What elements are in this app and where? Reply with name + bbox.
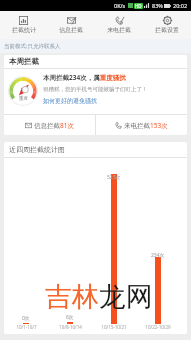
staticText: 拦截统计 — [12, 26, 36, 34]
staticText: 信息拦截81次 — [34, 121, 74, 130]
button[interactable]: 来电拦截153次 — [96, 115, 187, 135]
staticText: 0次 — [22, 315, 30, 322]
button[interactable]: 拦截设置 — [143, 11, 191, 39]
staticText: 拦截设置 — [155, 26, 179, 34]
staticText: 近四周拦截统计图 — [9, 145, 65, 154]
button[interactable]: 信息拦截81次 — [4, 115, 95, 135]
staticText: 吉林龙网 — [45, 280, 153, 314]
staticText: 来电拦截153次 — [124, 121, 168, 130]
staticText: 6次 — [66, 314, 74, 321]
staticText: 0K/s — [114, 2, 126, 9]
staticText: 10/8-10/14 — [59, 324, 82, 330]
staticText: HD — [135, 3, 142, 9]
button[interactable]: 来电拦截 — [95, 11, 143, 39]
button[interactable]: 拦截统计 — [0, 11, 47, 39]
staticText: 来电拦截 — [107, 26, 131, 34]
staticText: 信息拦截 — [59, 26, 83, 34]
staticText: 很糟糕，您的手机号可能被骗子们盯上了！ — [43, 86, 148, 93]
staticText: 234次 — [151, 252, 165, 259]
staticText: 本周拦截 — [9, 57, 39, 66]
staticText: 重度 — [19, 96, 28, 102]
staticText: 20:02 — [173, 2, 188, 9]
staticText: 10/1-10/7 — [16, 324, 37, 330]
button[interactable]: 信息拦截 — [47, 11, 95, 39]
staticText: 83% — [152, 2, 163, 9]
button[interactable]: 当前模式:只允许联系人 — [0, 39, 191, 53]
button[interactable]: 如何更好的避免骚扰 — [43, 97, 97, 105]
staticText: 10/22-10/29 — [145, 324, 171, 330]
staticText: 10/15-10/21 — [101, 324, 127, 330]
staticText: 当前模式:只允许联系人 — [4, 42, 61, 50]
staticText: 本周拦截234次，属重度骚扰 — [43, 73, 126, 82]
staticText: 523次 — [107, 174, 121, 181]
